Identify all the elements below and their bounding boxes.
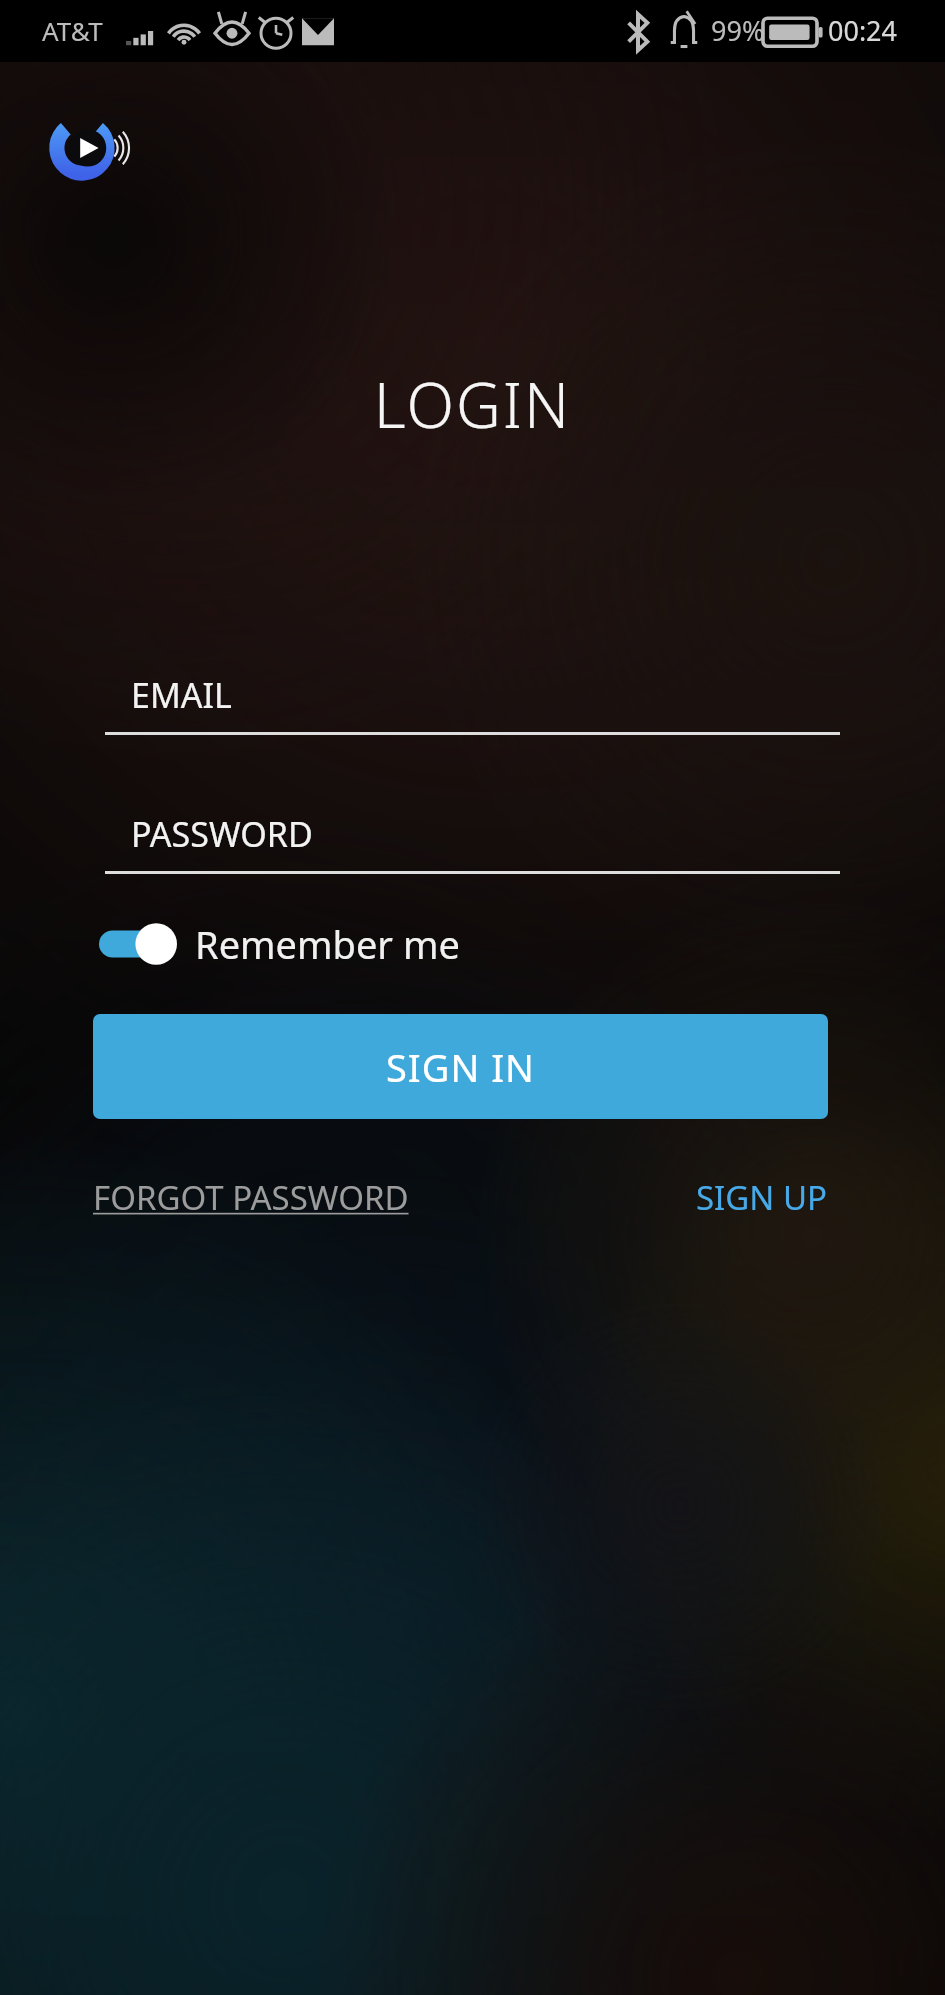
staticText: AT&T xyxy=(42,13,103,48)
other: App logo xyxy=(50,110,126,186)
staticText: Remember me xyxy=(195,918,460,970)
button[interactable]: FORGOT PASSWORD xyxy=(93,1175,409,1220)
staticText: EMAIL xyxy=(131,672,232,718)
staticText: SIGN UP xyxy=(696,1175,828,1220)
button[interactable]: PASSWORD xyxy=(105,811,840,874)
staticText: PASSWORD xyxy=(131,811,313,857)
button[interactable]: Remember me xyxy=(99,912,460,976)
staticText: SIGN IN xyxy=(386,1041,535,1093)
staticText: 00:24 xyxy=(828,12,898,49)
button[interactable]: SIGN UP xyxy=(696,1175,828,1220)
button[interactable]: SIGN IN xyxy=(93,1014,828,1119)
button[interactable]: EMAIL xyxy=(105,672,840,735)
staticText: FORGOT PASSWORD xyxy=(93,1175,409,1220)
staticText: 99% xyxy=(711,12,765,49)
staticText: LOGIN xyxy=(0,362,945,446)
